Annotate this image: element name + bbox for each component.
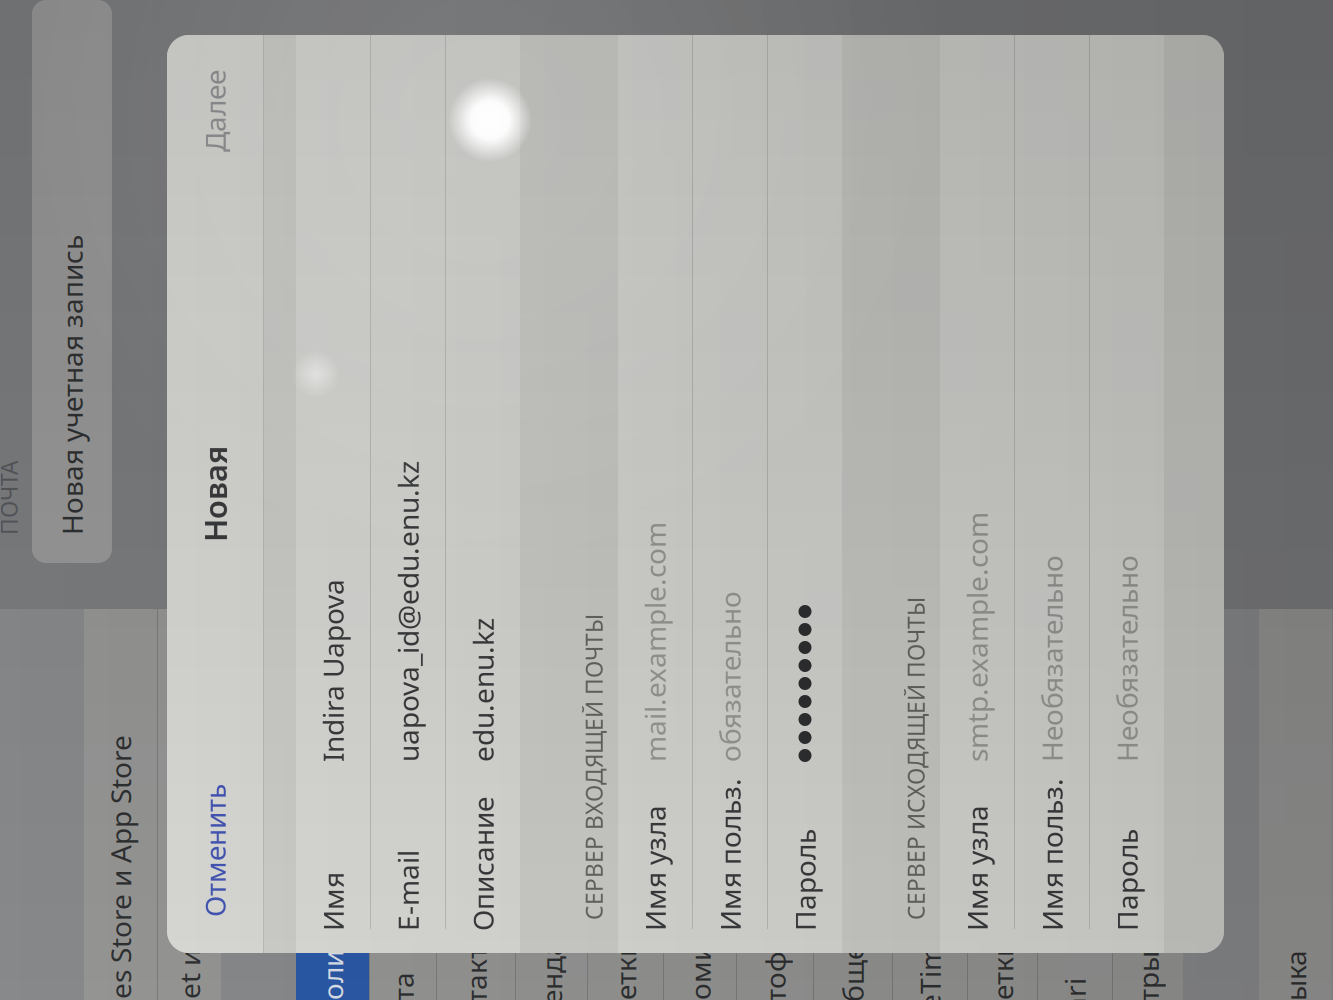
staticText: smtp.example.com bbox=[404, 792, 654, 829]
staticText: Имя польз. bbox=[235, 867, 388, 904]
staticText: Заметки bbox=[112, 817, 226, 855]
staticText: Safari bbox=[112, 890, 188, 927]
staticText: Новая bbox=[624, 28, 720, 69]
staticText: mail.example.com bbox=[404, 470, 644, 507]
button[interactable]: Имя узла bbox=[213, 451, 1131, 525]
button[interactable]: Safari bbox=[166, 871, 557, 945]
staticText: Отменить bbox=[249, 30, 382, 67]
button[interactable]: E-mail bbox=[213, 204, 1131, 278]
staticText: uapova_id@edu.enu.kz bbox=[404, 223, 705, 260]
staticText: E-mail bbox=[235, 223, 316, 260]
staticText: Indira Uapova bbox=[404, 148, 587, 185]
button[interactable]: Отменить bbox=[213, 0, 400, 96]
staticText: СЕРВЕР ИСХОДЯЩЕЙ ПОЧТЫ bbox=[246, 734, 569, 764]
staticText: Необязательно bbox=[404, 867, 611, 904]
button[interactable]: Пароли bbox=[166, 129, 557, 202]
button[interactable]: Диктофон bbox=[166, 570, 557, 646]
staticText: обязательно bbox=[404, 545, 575, 582]
button[interactable]: Пароль bbox=[213, 923, 1131, 997]
button[interactable]: Календарь bbox=[166, 349, 557, 420]
staticText: Контакты bbox=[112, 291, 241, 328]
staticText: Wallet и Apple Pay bbox=[112, 4, 353, 42]
button[interactable]: FaceTime bbox=[166, 726, 557, 800]
button[interactable]: Wallet и Apple Pay bbox=[166, 0, 557, 54]
button[interactable]: Имя польз. bbox=[213, 848, 1131, 922]
button[interactable]: Почта bbox=[166, 203, 557, 269]
staticText: Пароль bbox=[235, 942, 337, 979]
staticText: Имя польз. bbox=[235, 545, 388, 582]
button[interactable]: Далее bbox=[996, 0, 1131, 96]
staticText: Сообщения bbox=[112, 668, 271, 705]
staticText: FaceTime bbox=[112, 745, 237, 782]
staticText: Имя bbox=[235, 148, 294, 185]
staticText: Имя узла bbox=[235, 792, 361, 829]
staticText: Пароли bbox=[112, 147, 216, 185]
button[interactable]: Имя узла bbox=[213, 773, 1131, 847]
button[interactable]: Пароль bbox=[213, 601, 1131, 675]
button[interactable]: Быстрые команды bbox=[166, 946, 557, 1000]
button[interactable]: Контакты bbox=[166, 270, 557, 348]
staticText: Описание bbox=[235, 298, 369, 335]
button[interactable]: Имя bbox=[213, 129, 1131, 203]
button[interactable]: Описание bbox=[213, 279, 1131, 353]
staticText: Диктофон bbox=[112, 590, 249, 627]
button[interactable]: Заметки bbox=[166, 421, 557, 496]
button[interactable]: Сообщения bbox=[166, 647, 557, 725]
staticText: Почта bbox=[112, 218, 194, 255]
staticText: edu.enu.kz bbox=[404, 298, 548, 335]
staticText: Далее bbox=[1014, 30, 1096, 67]
button[interactable]: Имя польз. bbox=[213, 526, 1131, 600]
staticText: Пароль bbox=[235, 620, 337, 657]
staticText: СЕРВЕР ВХОДЯЩЕЙ ПОЧТЫ bbox=[246, 412, 552, 442]
staticText: Быстрые команды bbox=[112, 963, 361, 1000]
staticText: Заметки bbox=[112, 440, 226, 478]
staticText: Напоминания bbox=[112, 515, 305, 552]
staticText: Имя узла bbox=[235, 470, 361, 507]
button[interactable]: Напоминания bbox=[166, 497, 557, 569]
button[interactable]: Заметки bbox=[166, 801, 557, 870]
staticText: Необязательно bbox=[404, 942, 611, 979]
staticText: Календарь bbox=[112, 366, 258, 404]
